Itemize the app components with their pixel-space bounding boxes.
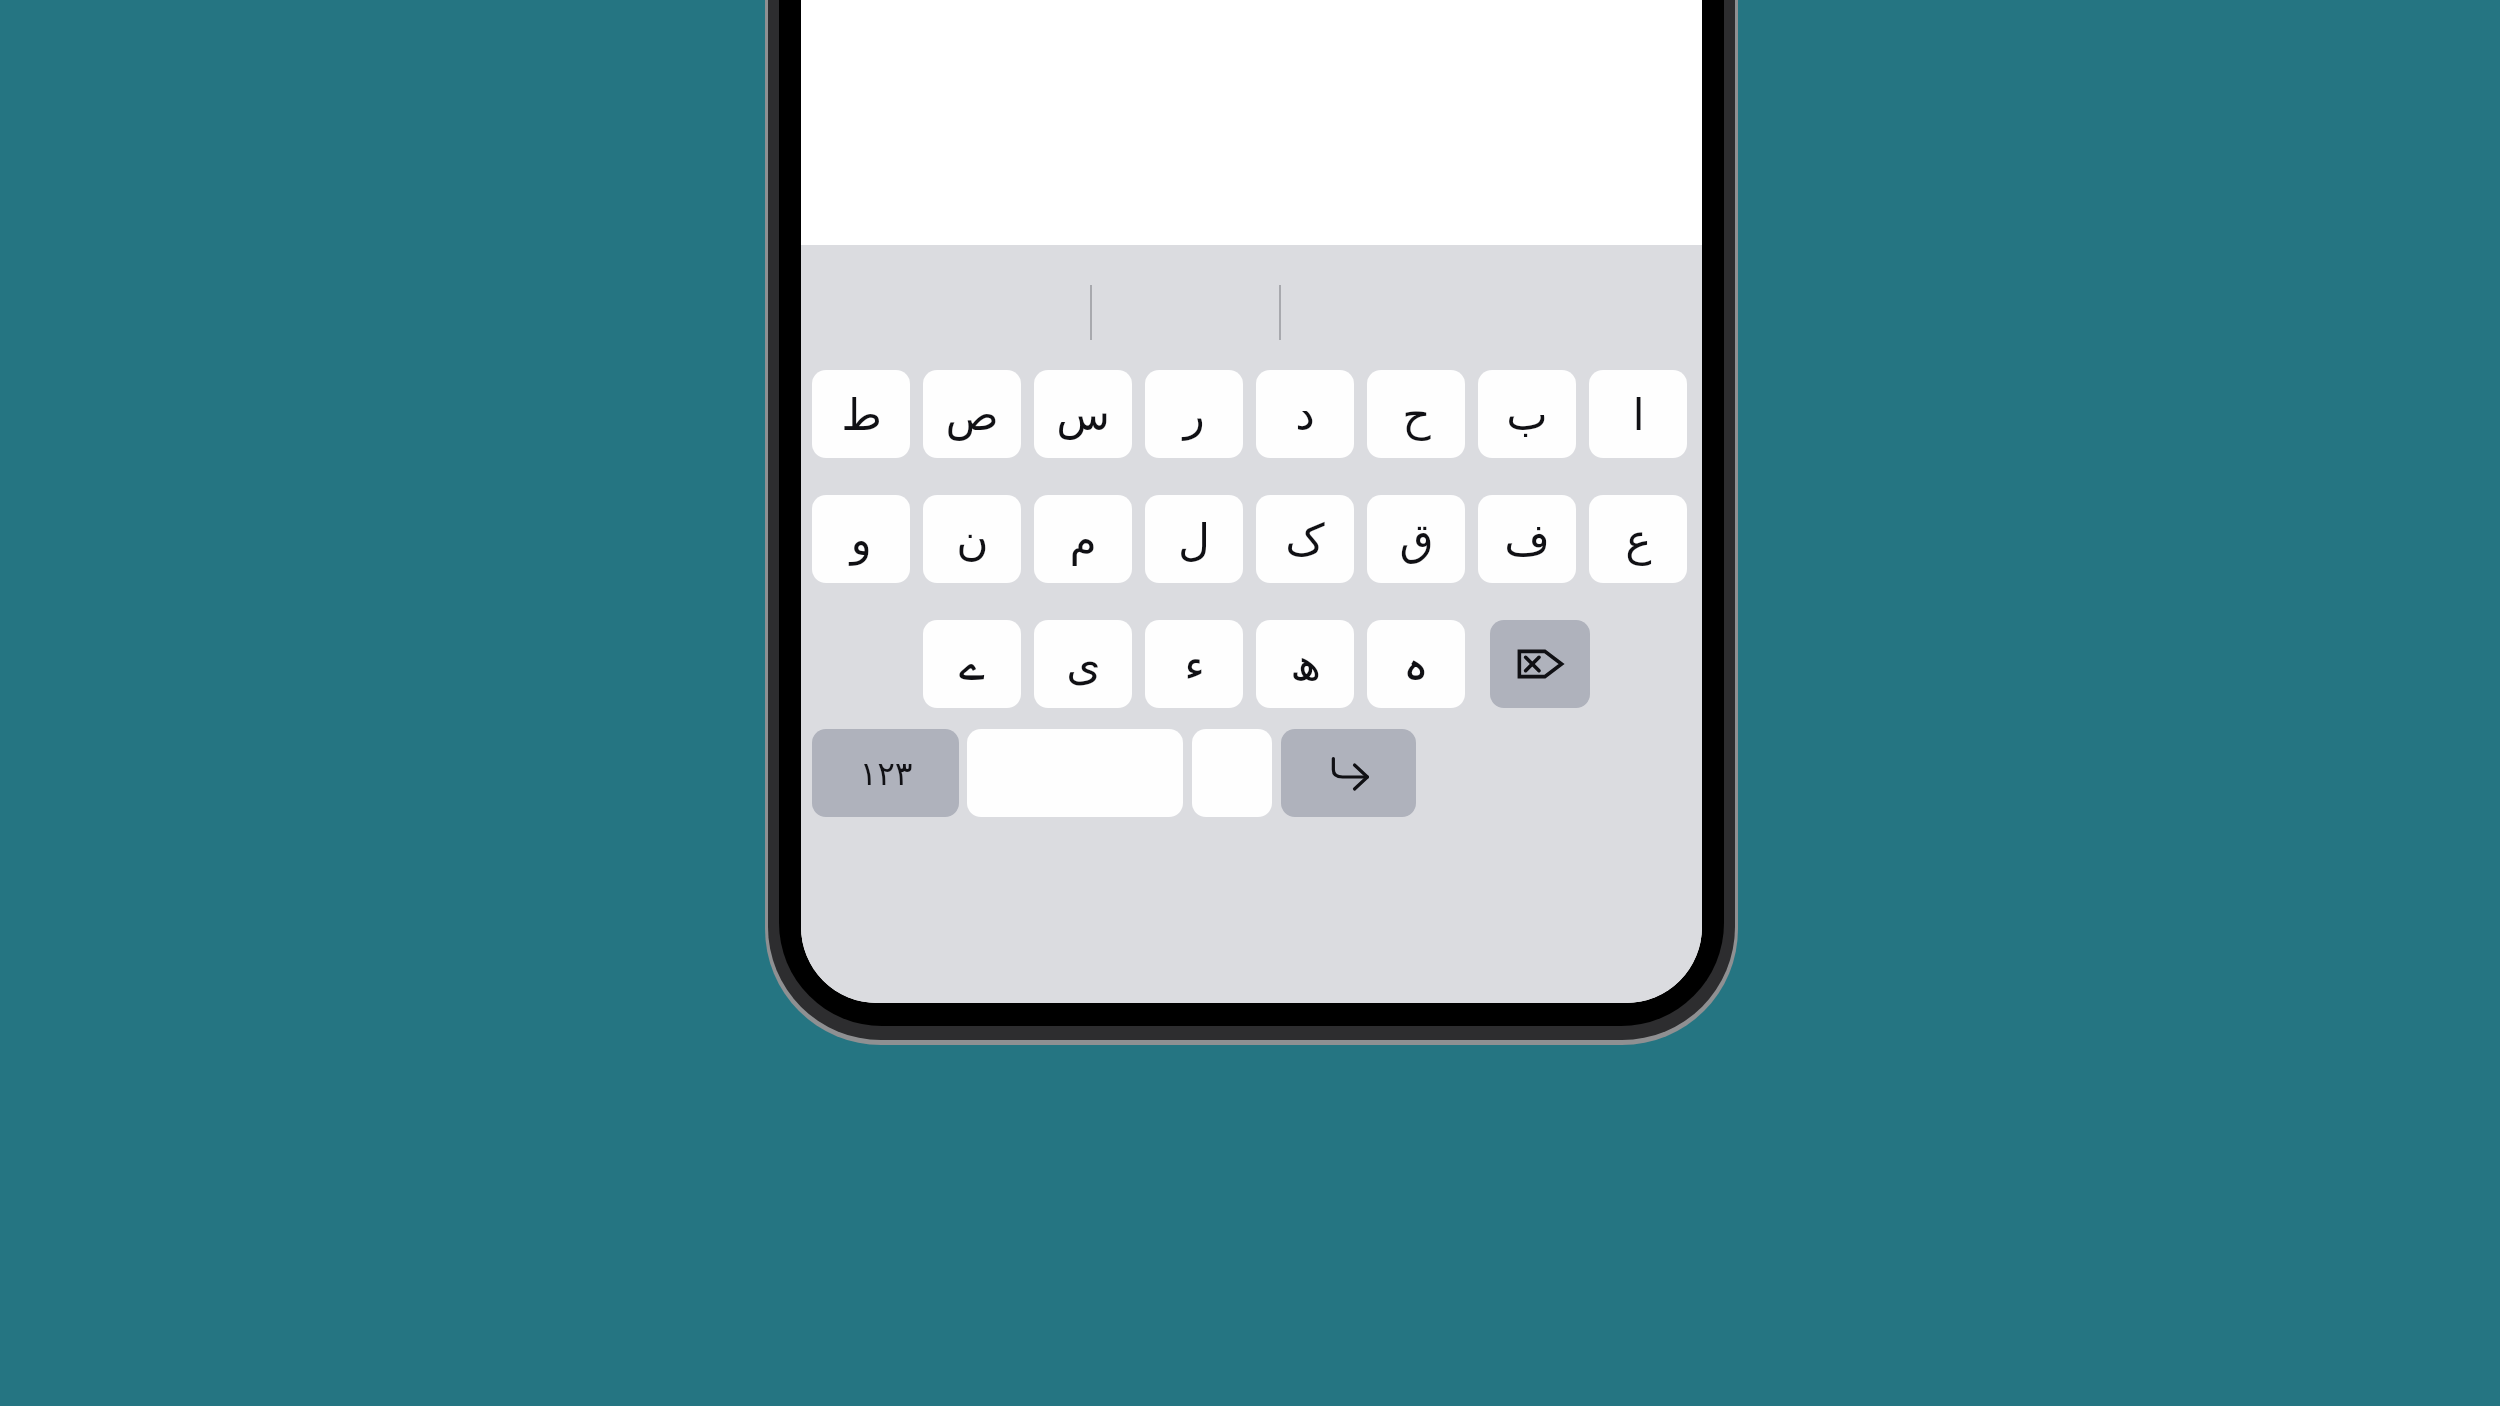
button[interactable]: ط — [812, 370, 910, 458]
button[interactable]: ع — [1589, 495, 1687, 583]
button[interactable]: Full stop — [1192, 729, 1272, 817]
button[interactable]: ۱۲۳ — [812, 729, 959, 817]
button[interactable]: ل — [1145, 495, 1243, 583]
button[interactable]: ء — [1145, 620, 1243, 708]
button[interactable]: ر — [1145, 370, 1243, 458]
button[interactable]: ہ — [1367, 620, 1465, 708]
button[interactable]: ھ — [1256, 620, 1354, 708]
staticText: ل — [1178, 514, 1210, 565]
button[interactable]: Enter — [1281, 729, 1416, 817]
button[interactable]: ے — [923, 620, 1021, 708]
staticText: ا — [1632, 389, 1645, 440]
button[interactable]: ف — [1478, 495, 1576, 583]
staticText: د — [1295, 389, 1315, 440]
staticText: ع — [1625, 514, 1652, 565]
staticText: ف — [1504, 514, 1550, 565]
button[interactable]: ب — [1478, 370, 1576, 458]
button[interactable]: ح — [1367, 370, 1465, 458]
staticText: س — [1056, 389, 1110, 440]
staticText: ر — [1183, 389, 1205, 440]
staticText: ب — [1506, 389, 1548, 440]
button[interactable]: د — [1256, 370, 1354, 458]
button[interactable]: ص — [923, 370, 1021, 458]
staticText: ہ — [1403, 639, 1429, 690]
staticText: ی — [1066, 639, 1101, 690]
staticText: و — [850, 514, 872, 565]
staticText: ن — [956, 514, 989, 565]
button[interactable]: ق — [1367, 495, 1465, 583]
button[interactable]: ی — [1034, 620, 1132, 708]
staticText: م — [1069, 514, 1097, 565]
button[interactable]: ن — [923, 495, 1021, 583]
button[interactable]: Space — [967, 729, 1183, 817]
button[interactable]: ک — [1256, 495, 1354, 583]
staticText: ص — [945, 389, 999, 440]
staticText: ک — [1285, 514, 1325, 565]
staticText: ے — [959, 639, 985, 690]
staticText: ق — [1399, 514, 1434, 565]
button[interactable]: ا — [1589, 370, 1687, 458]
button[interactable]: Backspace — [1490, 620, 1590, 708]
staticText: ۱۲۳ — [859, 754, 913, 792]
staticText: ط — [841, 389, 882, 440]
staticText: ء — [1184, 639, 1205, 690]
staticText: ح — [1402, 389, 1431, 440]
button[interactable]: و — [812, 495, 910, 583]
button[interactable]: م — [1034, 495, 1132, 583]
button[interactable]: س — [1034, 370, 1132, 458]
staticText: ھ — [1290, 639, 1321, 690]
